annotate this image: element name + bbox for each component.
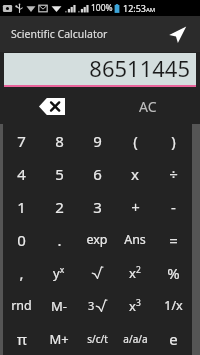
button[interactable]: 0	[3, 223, 40, 256]
staticText: =	[169, 230, 178, 250]
button[interactable]: 1	[3, 190, 40, 223]
button[interactable]: (	[116, 124, 154, 157]
button[interactable]: a/a/a	[116, 322, 154, 355]
staticText: M+	[49, 330, 69, 348]
button[interactable]: .	[40, 223, 78, 256]
staticText: yx	[53, 264, 65, 282]
staticText: +	[131, 197, 140, 217]
button[interactable]: )	[154, 124, 192, 157]
staticText: Ans	[124, 231, 146, 248]
button[interactable]: 6	[78, 157, 116, 190]
button[interactable]: +	[116, 190, 154, 223]
staticText: exp	[86, 231, 108, 248]
button[interactable]: %	[154, 256, 192, 289]
staticText: 9	[93, 131, 102, 151]
staticText: rnd	[11, 297, 32, 314]
staticText: x3	[129, 297, 141, 315]
staticText: 1/x	[164, 297, 183, 314]
staticText: (	[133, 131, 138, 151]
staticText: AC	[139, 97, 157, 116]
staticText: .	[57, 230, 62, 250]
staticText: 7	[17, 131, 26, 151]
button[interactable]: =	[154, 223, 192, 256]
button[interactable]: s/c/t	[78, 322, 116, 355]
button[interactable]: Send	[165, 22, 189, 46]
staticText: 3	[93, 197, 102, 217]
button[interactable]: 2	[40, 190, 78, 223]
button[interactable]: 9	[78, 124, 116, 157]
button[interactable]: AC	[100, 88, 196, 124]
staticText: a/a/a	[123, 332, 148, 346]
staticText: ÷	[169, 164, 178, 184]
button[interactable]: Square root	[78, 256, 116, 289]
button[interactable]: 7	[3, 124, 40, 157]
staticText: 6	[93, 164, 102, 184]
button[interactable]: M-	[40, 289, 78, 322]
button[interactable]: x2	[116, 256, 154, 289]
staticText: 12:53AM	[123, 2, 156, 14]
button[interactable]: 4	[3, 157, 40, 190]
staticText: 1	[17, 197, 26, 217]
staticText: 100%	[91, 2, 113, 14]
staticText: -	[171, 197, 176, 217]
staticText: 8	[55, 131, 64, 151]
button[interactable]: π	[3, 322, 40, 355]
button[interactable]: 3	[78, 190, 116, 223]
staticText: )	[171, 131, 176, 151]
staticText: x2	[129, 264, 141, 282]
staticText: ,	[19, 263, 24, 283]
button[interactable]: Backspace	[4, 88, 100, 124]
staticText: %	[167, 263, 180, 283]
button[interactable]: M+	[40, 322, 78, 355]
staticText: M-	[51, 297, 67, 315]
button[interactable]: exp	[78, 223, 116, 256]
staticText: e	[169, 329, 178, 349]
button[interactable]: ÷	[154, 157, 192, 190]
staticText: 5	[55, 164, 64, 184]
button[interactable]: 8	[40, 124, 78, 157]
button[interactable]: x3	[116, 289, 154, 322]
button[interactable]: e	[154, 322, 192, 355]
staticText: π	[17, 329, 27, 349]
staticText: x	[131, 164, 139, 184]
staticText: 86511445	[89, 53, 190, 83]
staticText: 3	[88, 298, 95, 313]
staticText: 2	[55, 197, 64, 217]
button[interactable]: rnd	[3, 289, 40, 322]
button[interactable]: 1/x	[154, 289, 192, 322]
staticText: Scientific Calculator	[11, 27, 108, 41]
staticText: 0	[17, 230, 26, 250]
button[interactable]: ,	[3, 256, 40, 289]
button[interactable]: 86511445	[4, 53, 196, 87]
button[interactable]: x	[116, 157, 154, 190]
staticText: 4	[17, 164, 26, 184]
button[interactable]: 5	[40, 157, 78, 190]
button[interactable]: -	[154, 190, 192, 223]
button[interactable]: Cube root	[78, 289, 116, 322]
button[interactable]: yx	[40, 256, 78, 289]
staticText: s/c/t	[87, 332, 108, 346]
button[interactable]: Ans	[116, 223, 154, 256]
